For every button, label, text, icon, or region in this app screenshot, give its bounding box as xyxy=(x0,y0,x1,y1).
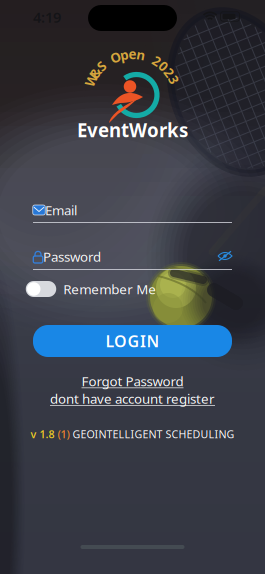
staticText: e xyxy=(128,45,136,63)
staticText: p xyxy=(120,46,128,64)
staticText: 2 xyxy=(165,64,173,81)
staticText: O xyxy=(110,48,121,66)
staticText: GEOINTELLIGENT SCHEDULING xyxy=(72,427,234,441)
button[interactable]: Forgot Password xyxy=(81,372,183,390)
staticText: 3 xyxy=(170,71,178,89)
button[interactable]: Remember Me xyxy=(26,280,156,298)
staticText: Remember Me xyxy=(63,280,156,298)
staticText: (1) xyxy=(57,427,69,441)
staticText: EventWorks xyxy=(77,118,188,142)
staticText: Forgot Password xyxy=(81,372,183,390)
staticText: LOGIN xyxy=(105,330,159,352)
staticText: S xyxy=(98,57,105,75)
staticText: 2 xyxy=(153,52,161,70)
staticText: Password xyxy=(43,248,101,265)
staticText: Email xyxy=(45,201,77,219)
staticText: dont have account register xyxy=(50,390,215,407)
button[interactable]: Password xyxy=(28,238,237,275)
button[interactable]: Show password xyxy=(213,246,237,266)
staticText: 0 xyxy=(160,57,168,75)
staticText: v 1.8 xyxy=(30,427,54,441)
staticText: & xyxy=(91,64,101,81)
staticText: W xyxy=(85,71,98,89)
button[interactable]: Email xyxy=(28,191,237,228)
button[interactable]: dont have account register xyxy=(50,390,215,407)
button[interactable]: LOGIN xyxy=(33,325,232,357)
staticText: n xyxy=(136,46,145,64)
staticText: 4:19 xyxy=(33,7,61,27)
